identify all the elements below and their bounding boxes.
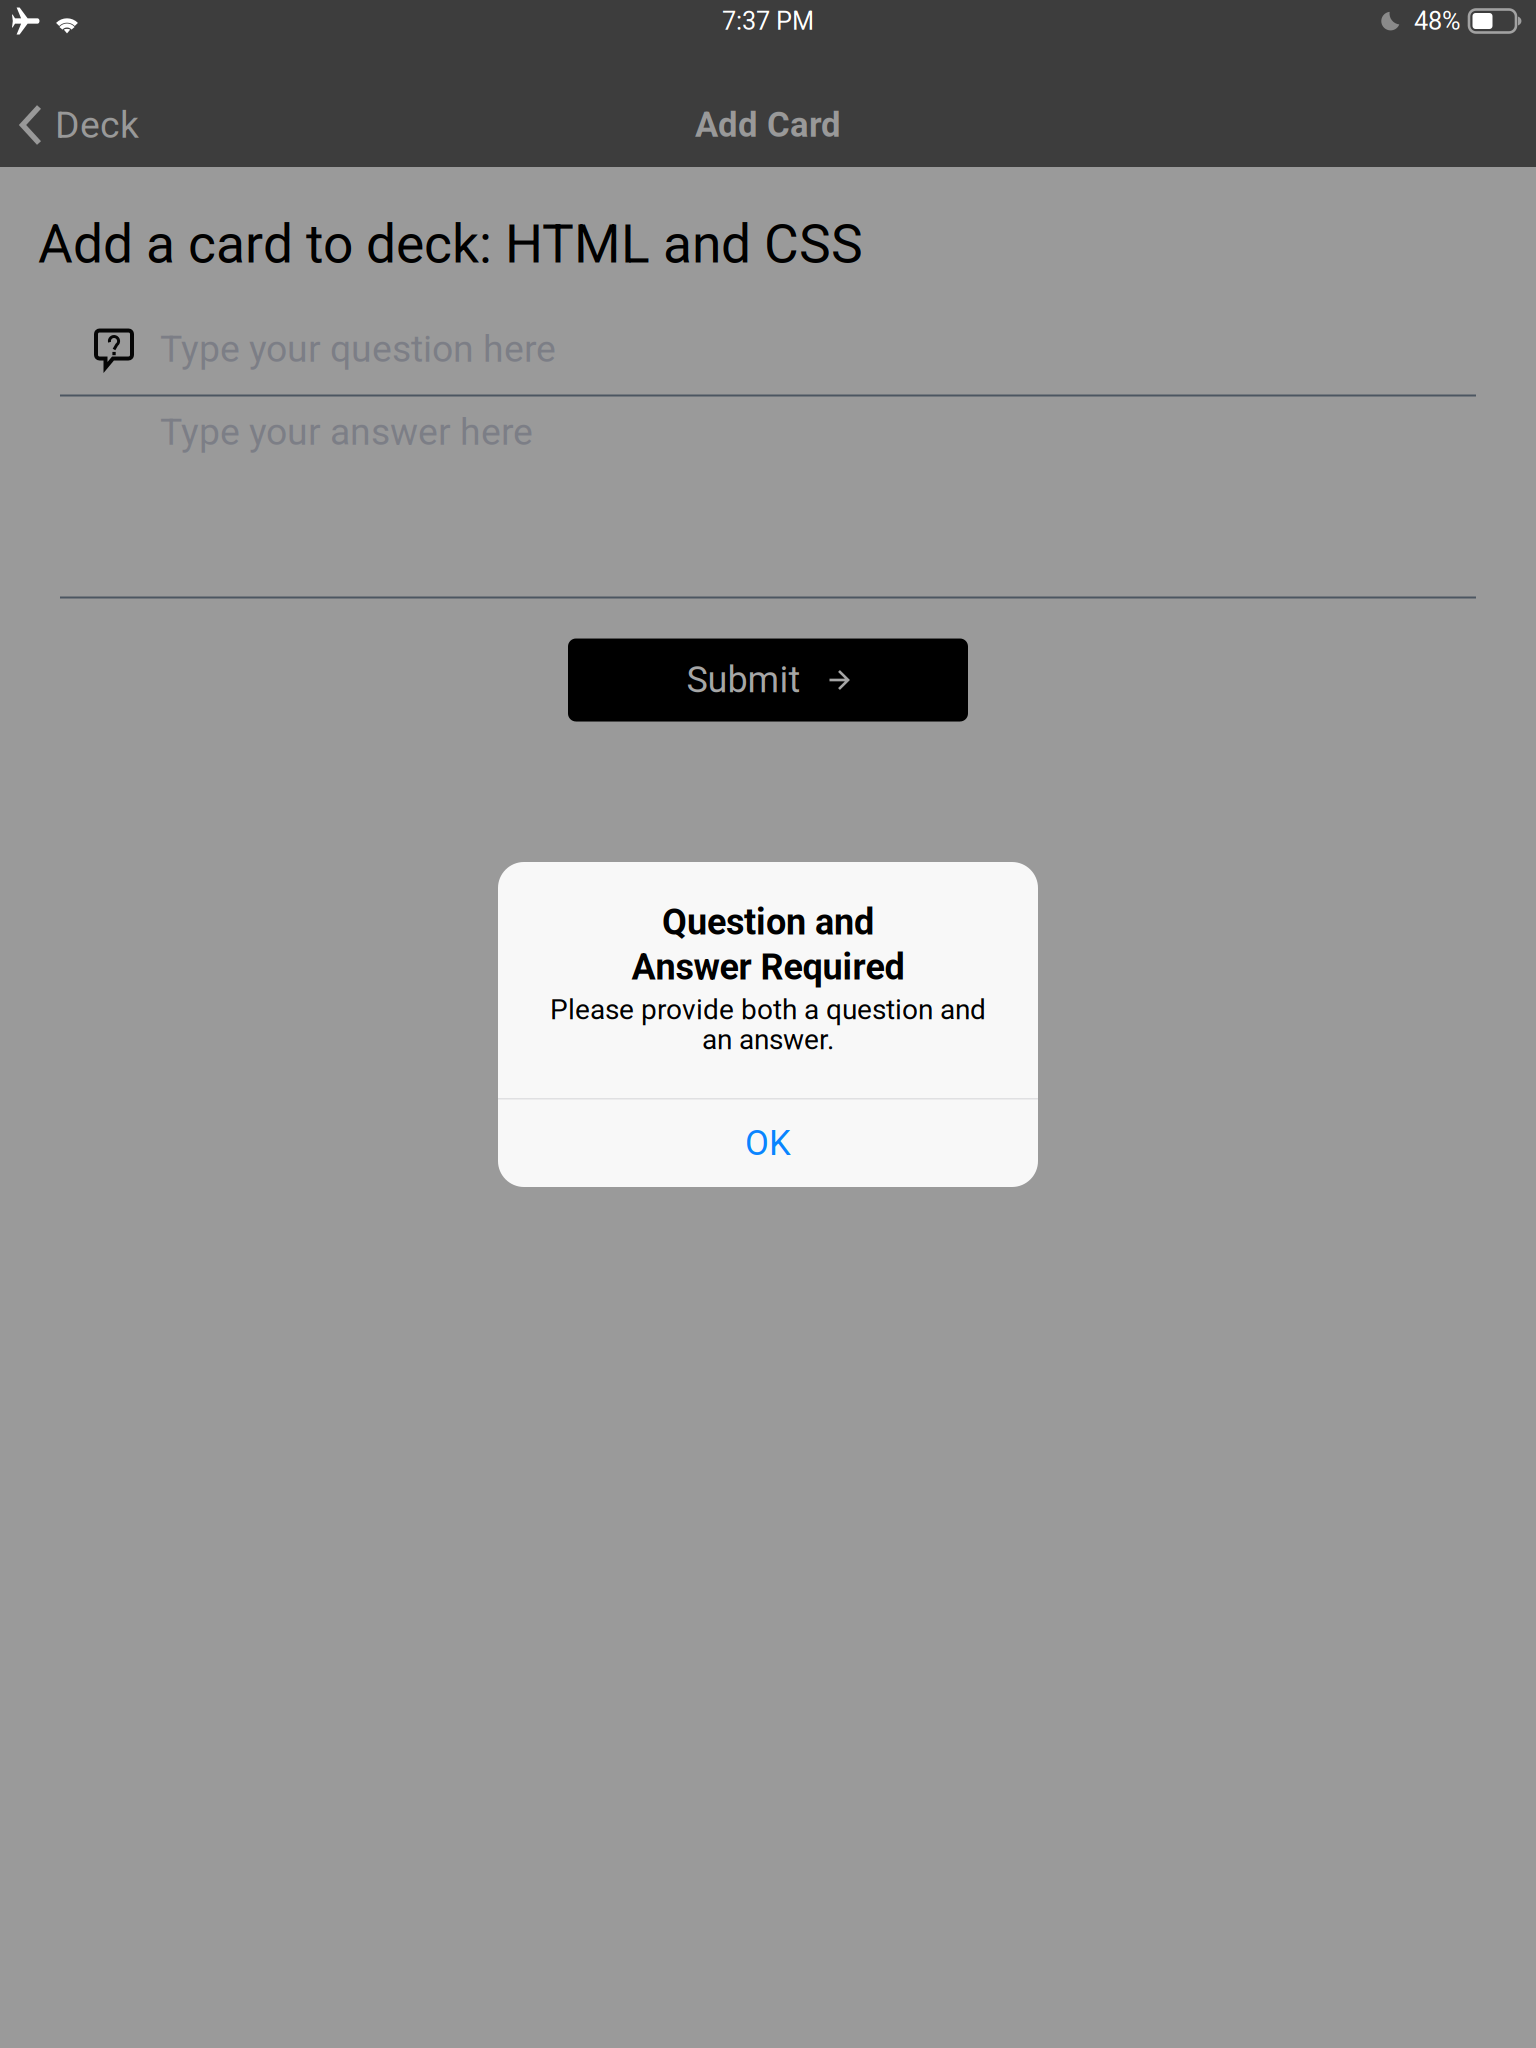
staticText: Deck — [55, 103, 139, 147]
staticText: Add Card — [695, 105, 841, 145]
staticText: Type your question here — [160, 327, 556, 371]
staticText: an answer. — [702, 1023, 834, 1056]
button[interactable]: Type your answer here — [0, 396, 1536, 596]
button[interactable]: Deck — [0, 83, 155, 167]
staticText: Add a card to deck: HTML and CSS — [38, 213, 863, 275]
staticText: 7:37 PM — [722, 6, 814, 36]
staticText: Answer Required — [631, 946, 904, 988]
staticText: 48% — [1414, 6, 1461, 36]
staticText: Type your answer here — [160, 410, 533, 454]
staticText: Question and — [662, 901, 874, 943]
button[interactable]: OK — [498, 1099, 1038, 1187]
staticText: Submit — [686, 659, 800, 701]
button[interactable]: Submit — [568, 638, 968, 721]
staticText: Please provide both a question and — [550, 993, 986, 1026]
staticText: OK — [745, 1123, 791, 1163]
button[interactable]: Type your question here — [0, 275, 1536, 370]
